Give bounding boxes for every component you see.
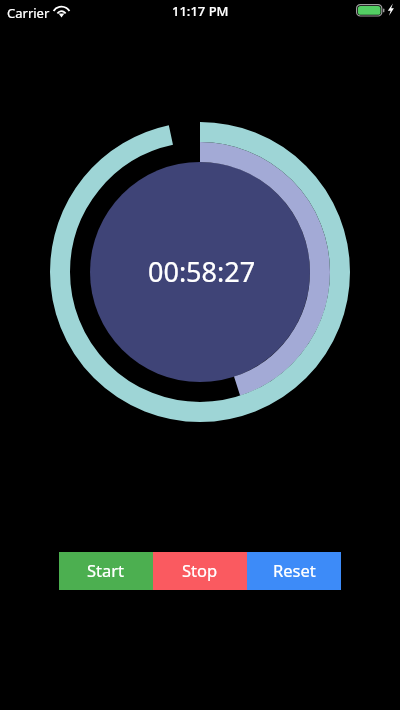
other: Wi-Fi (53, 4, 70, 16)
staticText: 11:17 PM (172, 2, 229, 20)
staticText: Stop (182, 559, 218, 581)
staticText: Start (87, 559, 125, 581)
button[interactable]: Start (59, 552, 153, 590)
staticText: Reset (273, 559, 316, 581)
staticText: 00:58:27 (148, 253, 256, 290)
staticText: Carrier (7, 4, 50, 22)
other: Battery charging (356, 4, 395, 16)
button[interactable]: Stop (153, 552, 247, 590)
button[interactable]: Reset (247, 552, 341, 590)
